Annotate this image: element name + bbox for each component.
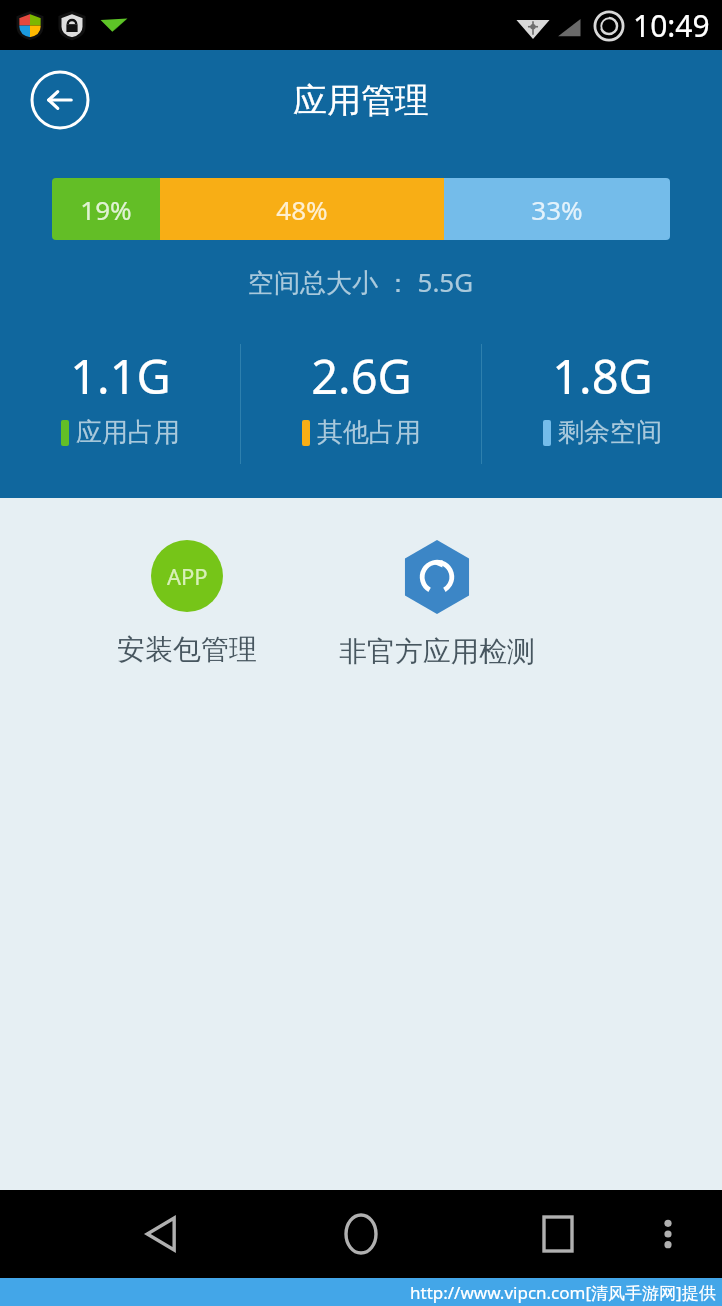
staticText: 1.1G	[70, 344, 171, 408]
button[interactable]: APP	[62, 540, 312, 667]
button[interactable]: 33%	[444, 178, 670, 240]
staticText: 1.8G	[552, 344, 653, 408]
button[interactable]: 1.8G	[482, 344, 722, 449]
staticText: 33%	[531, 192, 583, 227]
staticText: 2.6G	[311, 344, 412, 408]
staticText: 剩余空间	[558, 416, 662, 449]
button[interactable]: Back	[130, 1202, 194, 1266]
staticText: APP	[167, 561, 208, 591]
staticText: 19%	[80, 192, 132, 227]
button[interactable]: More options	[640, 1206, 696, 1262]
staticText: 非官方应用检测	[339, 634, 535, 669]
button[interactable]: 1.1G	[0, 344, 240, 449]
staticText: 48%	[276, 192, 328, 227]
staticText: 10:49	[633, 5, 710, 46]
button[interactable]: 2.6G	[241, 344, 481, 449]
staticText: 应用管理	[293, 79, 429, 122]
staticText: http://www.vipcn.com[清风手游网]提供	[410, 1281, 716, 1304]
staticText: 应用占用	[76, 416, 180, 449]
button[interactable]: Home	[329, 1202, 393, 1266]
button[interactable]: Recents	[526, 1202, 590, 1266]
button[interactable]: 48%	[160, 178, 444, 240]
button[interactable]: 19%	[52, 178, 160, 240]
button[interactable]: 非官方应用检测	[312, 540, 562, 669]
staticText: 安装包管理	[117, 632, 257, 667]
staticText: 空间总大小 ： 5.5G	[248, 264, 474, 300]
staticText: 其他占用	[317, 416, 421, 449]
button[interactable]: Back	[30, 70, 90, 130]
